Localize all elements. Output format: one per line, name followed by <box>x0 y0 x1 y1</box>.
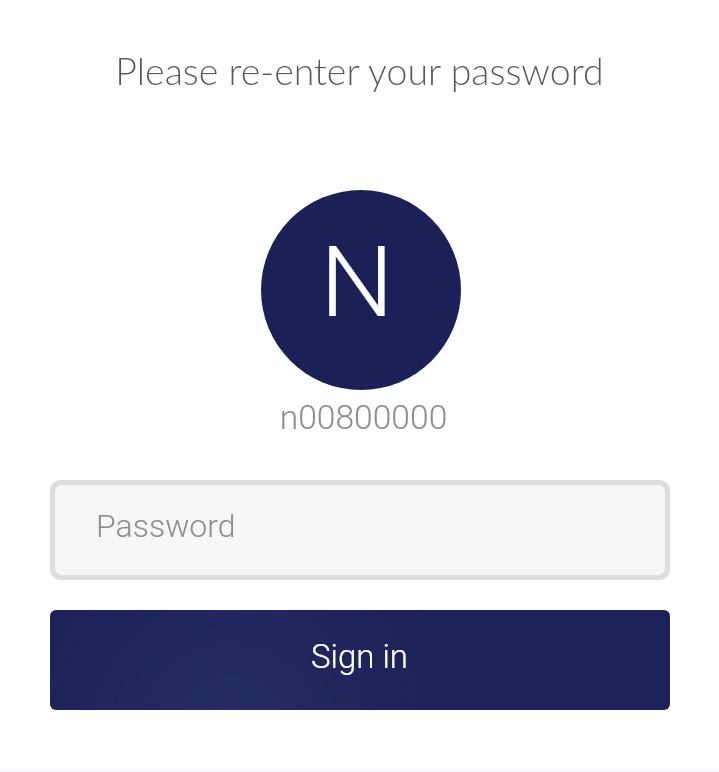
staticText: Password <box>96 507 236 545</box>
staticText: n00800000 <box>4 398 719 437</box>
button[interactable]: Password <box>55 485 665 575</box>
other: Account avatar, N <box>261 190 461 390</box>
button[interactable]: Sign in <box>50 610 670 710</box>
staticText: N <box>320 225 394 340</box>
staticText: Please re-enter your password <box>0 48 719 93</box>
staticText: Sign in <box>311 637 409 676</box>
